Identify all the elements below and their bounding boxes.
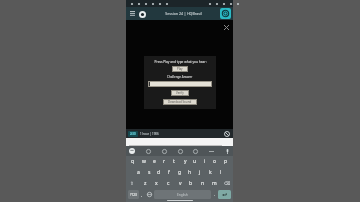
button[interactable]: Download Sound — [163, 99, 197, 105]
button[interactable]: l — [217, 168, 225, 177]
staticText: z — [144, 180, 147, 187]
staticText: v — [179, 180, 182, 187]
button[interactable]: w — [140, 157, 148, 166]
button[interactable]: n — [199, 179, 207, 188]
staticText: s — [148, 169, 151, 176]
staticText: 2:30 — [130, 132, 136, 136]
button[interactable]: q — [129, 157, 137, 166]
button[interactable]: Backspace — [222, 179, 232, 188]
button[interactable]: e — [150, 157, 158, 166]
staticText: k — [209, 169, 212, 176]
staticText: u — [193, 158, 197, 165]
staticText: g — [178, 169, 182, 176]
button[interactable]: d — [155, 168, 163, 177]
button[interactable]: Tool 4 — [191, 147, 199, 155]
button[interactable]: ?123 — [128, 190, 139, 199]
staticText: ⌫ — [224, 181, 231, 186]
staticText: Download Sound — [168, 100, 192, 104]
button[interactable]: English — [154, 190, 211, 199]
button[interactable]: o — [211, 157, 219, 166]
button[interactable]: y — [181, 157, 189, 166]
button[interactable]: b — [187, 179, 195, 188]
staticText: l — [220, 169, 222, 176]
staticText: b — [189, 180, 193, 187]
staticText: Play — [177, 67, 183, 71]
staticText: h — [188, 169, 192, 176]
button[interactable]: Enter — [218, 190, 231, 199]
staticText: c — [167, 180, 170, 187]
button[interactable] — [148, 81, 212, 87]
button[interactable]: f — [165, 168, 173, 177]
button[interactable]: More — [207, 147, 215, 155]
staticText: p — [224, 158, 228, 165]
staticText: ⇧ — [130, 181, 134, 186]
button[interactable]: g — [176, 168, 184, 177]
button[interactable]: Tool 2 — [160, 147, 168, 155]
button[interactable]: Voice input — [223, 147, 231, 155]
staticText: i — [204, 158, 206, 165]
button[interactable]: Tool 3 — [176, 147, 184, 155]
button[interactable]: u — [191, 157, 199, 166]
button[interactable]: i — [201, 157, 209, 166]
button[interactable]: c — [164, 179, 172, 188]
staticText: q — [131, 158, 135, 165]
button[interactable]: j — [196, 168, 204, 177]
button[interactable]: Record — [137, 9, 147, 19]
staticText: y — [184, 158, 187, 165]
button[interactable]: Camera — [220, 8, 231, 19]
button[interactable]: r — [160, 157, 168, 166]
staticText: d — [157, 169, 161, 176]
staticText: ?123 — [130, 193, 137, 197]
button[interactable]: t — [170, 157, 178, 166]
button[interactable]: z — [141, 179, 149, 188]
button[interactable]: x — [152, 179, 160, 188]
button[interactable]: Language — [145, 190, 153, 199]
staticText: r — [163, 158, 166, 165]
staticText: x — [155, 180, 158, 187]
staticText: o — [213, 158, 217, 165]
staticText: English — [177, 193, 188, 197]
button[interactable]: Close — [222, 23, 230, 31]
staticText: t — [173, 158, 175, 165]
staticText: n — [201, 180, 205, 187]
staticText: m — [212, 180, 217, 187]
button[interactable]: Emoji — [128, 147, 136, 155]
staticText: e — [153, 158, 156, 165]
button[interactable] — [129, 138, 230, 146]
button[interactable]: s — [145, 168, 153, 177]
button[interactable]: p — [222, 157, 230, 166]
staticText: w — [142, 158, 146, 165]
button[interactable]: Menu — [128, 9, 137, 18]
button[interactable]: Shift — [127, 179, 137, 188]
button[interactable]: a — [134, 168, 142, 177]
staticText: , — [141, 192, 143, 197]
staticText: f — [168, 169, 170, 176]
button[interactable]: k — [206, 168, 214, 177]
staticText: Session 24 | HQBrasil — [165, 11, 202, 16]
button[interactable]: Comma — [139, 190, 145, 199]
staticText: Challenge Answer — [167, 75, 193, 79]
staticText: Verify — [176, 91, 184, 95]
button[interactable]: Tool 1 — [144, 147, 152, 155]
button[interactable]: Block — [223, 130, 231, 138]
button[interactable]: h — [186, 168, 194, 177]
button[interactable]: v — [176, 179, 184, 188]
staticText: . — [214, 192, 216, 197]
staticText: Press Play and type what you hear: — [154, 60, 207, 64]
staticText: j — [199, 169, 201, 176]
button[interactable]: Verify — [171, 90, 189, 96]
button[interactable]: m — [210, 179, 218, 188]
staticText: 1 hour | 1906 — [140, 132, 159, 136]
staticText: a — [137, 169, 140, 176]
button[interactable]: Play — [172, 66, 188, 72]
button[interactable]: Period — [212, 190, 218, 199]
